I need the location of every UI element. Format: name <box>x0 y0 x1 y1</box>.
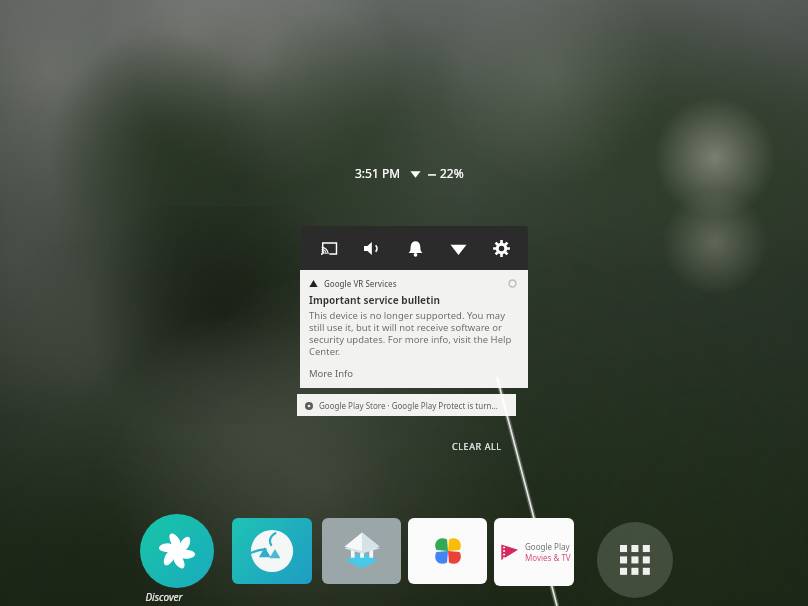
button[interactable]: Google Photos <box>408 518 487 584</box>
button[interactable]: Apps <box>597 522 673 598</box>
button[interactable]: Google VR Services <box>300 270 528 388</box>
button[interactable]: Volume <box>358 235 384 261</box>
staticText: Important service bulletin <box>309 293 440 307</box>
staticText: More Info <box>309 367 354 380</box>
staticText: Google VR Services <box>324 278 397 289</box>
button[interactable]: Settings <box>488 235 514 261</box>
button[interactable]: CLEAR ALL <box>448 436 506 456</box>
button[interactable]: Cast <box>315 235 341 261</box>
staticText: This device is no longer supported. You … <box>309 309 519 358</box>
other: Expand <box>508 279 517 288</box>
button[interactable]: Google Play Movies and TV <box>494 518 574 586</box>
staticText: 22% <box>440 165 464 181</box>
staticText: CLEAR ALL <box>452 440 502 452</box>
staticText: 3:51 PM <box>355 165 401 181</box>
button[interactable]: More Info <box>309 367 354 388</box>
button[interactable]: Notifications <box>402 235 428 261</box>
staticText: Discover <box>145 590 183 604</box>
button[interactable]: Wi-Fi <box>445 235 471 261</box>
button[interactable]: Google Earth VR <box>232 518 312 584</box>
staticText: Google Play Store · Google Play Protect … <box>319 400 498 411</box>
button[interactable]: Arts and Culture <box>322 518 401 584</box>
staticText: Google Play <box>525 541 570 552</box>
staticText: Movies & TV <box>525 552 571 563</box>
button[interactable]: Google Play Store · Google Play Protect … <box>297 394 516 416</box>
button[interactable]: Discover <box>140 514 214 588</box>
